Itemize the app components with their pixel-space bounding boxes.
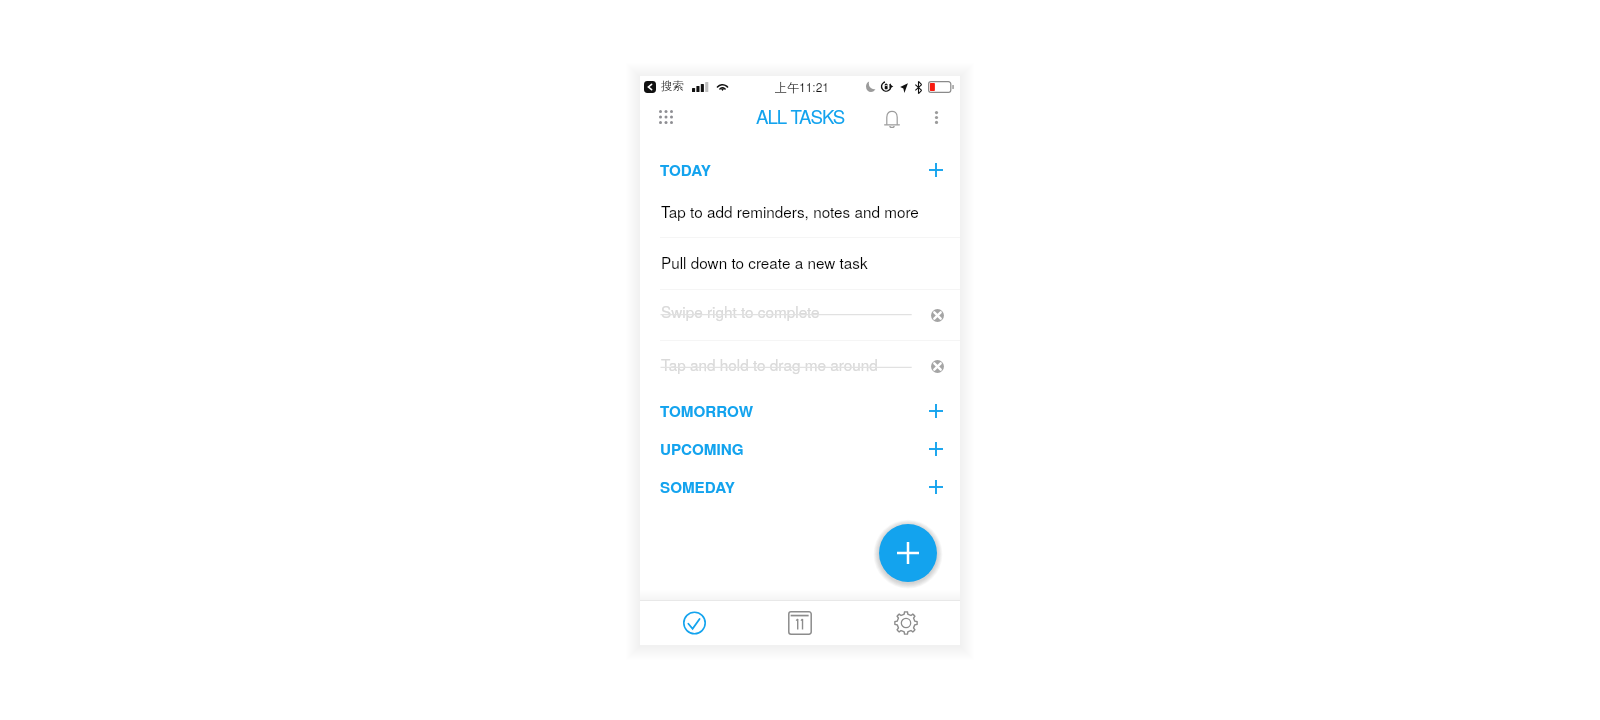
button[interactable]: Delete task [924, 302, 950, 328]
button[interactable]: Lists [650, 101, 682, 133]
button[interactable]: Swipe right to complete [640, 287, 960, 337]
staticText: 上午11:21 [775, 78, 830, 95]
button[interactable]: TOMORROW [640, 392, 960, 430]
button[interactable]: Add item to TOMORROW [922, 397, 950, 425]
staticText: ALL TASKS [756, 103, 845, 130]
button[interactable]: TODAY [640, 151, 960, 189]
button[interactable]: UPCOMING [640, 430, 960, 468]
staticText: Tap to add reminders, notes and more [661, 200, 919, 222]
button[interactable]: Delete task [924, 353, 950, 379]
staticText: Pull down to create a new task [661, 251, 868, 273]
staticText: UPCOMING [660, 438, 744, 460]
button[interactable]: Pull down to create a new task [640, 238, 960, 288]
staticText: TOMORROW [660, 400, 753, 422]
staticText: Swipe right to complete [661, 300, 820, 322]
button[interactable]: Add item to TODAY [922, 156, 950, 184]
button[interactable]: Calendar [774, 601, 826, 645]
button[interactable]: Add task [879, 524, 937, 582]
button[interactable]: Notifications [876, 103, 908, 135]
button[interactable]: Settings [880, 601, 932, 645]
staticText: Tap and hold to drag me around [661, 353, 878, 375]
button[interactable]: Tap and hold to drag me around [640, 340, 960, 390]
staticText: SOMEDAY [660, 476, 735, 498]
staticText: TODAY [660, 159, 711, 181]
button[interactable]: Add item to UPCOMING [922, 435, 950, 463]
button[interactable]: SOMEDAY [640, 468, 960, 506]
staticText: 搜索 [661, 79, 684, 93]
button[interactable]: Tasks [668, 601, 720, 645]
button[interactable]: More options [923, 104, 949, 130]
button[interactable]: Tap to add reminders, notes and more [640, 187, 960, 237]
button[interactable]: Add item to SOMEDAY [922, 473, 950, 501]
